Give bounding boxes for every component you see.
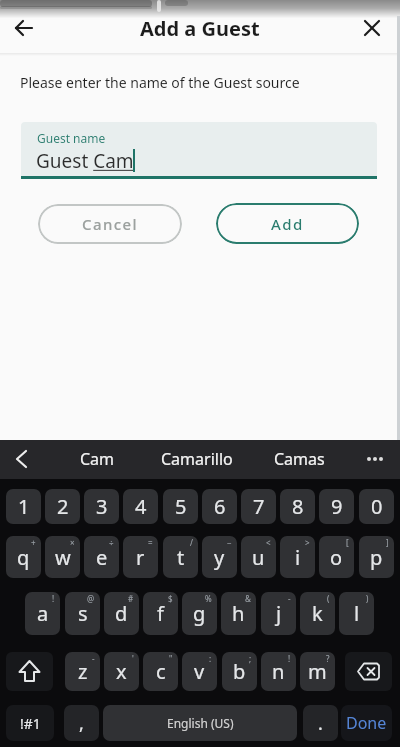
button[interactable]: Cam	[57, 444, 137, 474]
staticText: 8	[292, 493, 304, 520]
staticText: Camarillo	[161, 448, 233, 470]
button[interactable]: English (US)	[103, 705, 297, 741]
staticText: -	[288, 593, 291, 604]
staticText: ,	[79, 711, 84, 736]
button[interactable]: k	[300, 592, 335, 635]
button[interactable]: 9	[319, 489, 354, 524]
button[interactable]: g	[182, 592, 217, 635]
staticText: '	[132, 653, 134, 664]
staticText: d	[115, 600, 128, 627]
staticText: Guest name	[37, 130, 106, 146]
button[interactable]: o	[319, 536, 354, 578]
button[interactable]: a	[25, 592, 60, 635]
staticText: Add a Guest	[140, 15, 260, 42]
button[interactable]: y	[202, 536, 237, 578]
staticText: @	[87, 593, 95, 604]
staticText: -	[92, 653, 95, 664]
button[interactable]: Guest name	[21, 122, 377, 178]
button[interactable]: 0	[359, 489, 394, 524]
staticText: ÷	[109, 537, 114, 548]
button[interactable]: m	[300, 652, 335, 691]
button[interactable]: d	[104, 592, 139, 635]
staticText: f	[157, 600, 164, 627]
staticText: (	[327, 593, 330, 604]
staticText: .	[318, 711, 323, 736]
staticText: Cam	[80, 448, 115, 470]
staticText: %	[205, 593, 212, 604]
button[interactable]: Camas	[259, 444, 339, 474]
staticText: =	[148, 537, 153, 548]
button[interactable]: x	[104, 652, 139, 691]
button[interactable]: c	[143, 652, 178, 691]
staticText: 6	[214, 493, 226, 520]
button[interactable]: ,	[64, 705, 99, 741]
staticText: y	[214, 544, 225, 571]
button[interactable]: l	[339, 592, 374, 635]
staticText: &	[245, 593, 251, 604]
staticText: #	[128, 593, 134, 604]
button[interactable]	[6, 444, 36, 474]
staticText: x	[116, 658, 127, 685]
button[interactable]: 8	[280, 489, 315, 524]
button[interactable]: n	[261, 652, 296, 691]
staticText: z	[78, 658, 88, 685]
button[interactable]: h	[221, 592, 256, 635]
button[interactable]	[8, 12, 40, 44]
button[interactable]: Camarillo	[147, 444, 247, 474]
staticText: Cancel	[82, 214, 138, 234]
button[interactable]: Done	[341, 705, 392, 741]
staticText: 1	[18, 493, 30, 520]
staticText: −	[227, 537, 232, 548]
button[interactable]: e	[84, 536, 119, 578]
staticText: g	[193, 600, 206, 627]
button[interactable]: j	[261, 592, 296, 635]
button[interactable]: 6	[202, 489, 237, 524]
staticText: 3	[96, 493, 108, 520]
button[interactable]: 1	[6, 489, 41, 524]
staticText: English (US)	[167, 715, 234, 731]
staticText: Add	[271, 214, 304, 234]
button[interactable]: 3	[84, 489, 119, 524]
button[interactable]: !#1	[6, 705, 54, 741]
staticText: u	[252, 544, 265, 571]
staticText: ]	[386, 537, 389, 548]
staticText: <	[266, 537, 271, 548]
button[interactable]	[356, 12, 388, 44]
button[interactable]: Cancel	[38, 204, 182, 244]
button[interactable]: 4	[123, 489, 158, 524]
button[interactable]	[6, 652, 53, 691]
button[interactable]: u	[241, 536, 276, 578]
staticText: o	[330, 544, 343, 571]
button[interactable]: 5	[163, 489, 198, 524]
staticText: [	[346, 537, 349, 548]
button[interactable]: .	[303, 705, 338, 741]
button[interactable]: t	[163, 536, 198, 578]
button[interactable]: i	[280, 536, 315, 578]
staticText: 4	[135, 493, 147, 520]
staticText: c	[156, 658, 166, 685]
staticText: j	[276, 600, 282, 627]
button[interactable]: p	[359, 536, 394, 578]
button[interactable]: f	[143, 592, 178, 635]
button[interactable]: s	[65, 592, 100, 635]
button[interactable]: 2	[45, 489, 80, 524]
staticText: +	[31, 537, 36, 548]
button[interactable]: q	[6, 536, 41, 578]
button[interactable]	[345, 652, 392, 691]
staticText: r	[136, 544, 145, 571]
staticText: Please enter the name of the Guest sourc…	[20, 73, 300, 92]
button[interactable]: b	[222, 652, 257, 691]
staticText: m	[308, 658, 327, 685]
staticText: :	[209, 653, 212, 664]
staticText: 5	[175, 493, 187, 520]
button[interactable]: w	[45, 536, 80, 578]
button[interactable]: v	[182, 652, 217, 691]
button[interactable]: 7	[241, 489, 276, 524]
staticText: 9	[331, 493, 343, 520]
button[interactable]: z	[65, 652, 100, 691]
button[interactable]: Add	[216, 203, 359, 244]
button[interactable]: r	[123, 536, 158, 578]
staticText: ;	[249, 653, 252, 664]
staticText: b	[233, 658, 246, 685]
staticText: !	[52, 593, 55, 604]
